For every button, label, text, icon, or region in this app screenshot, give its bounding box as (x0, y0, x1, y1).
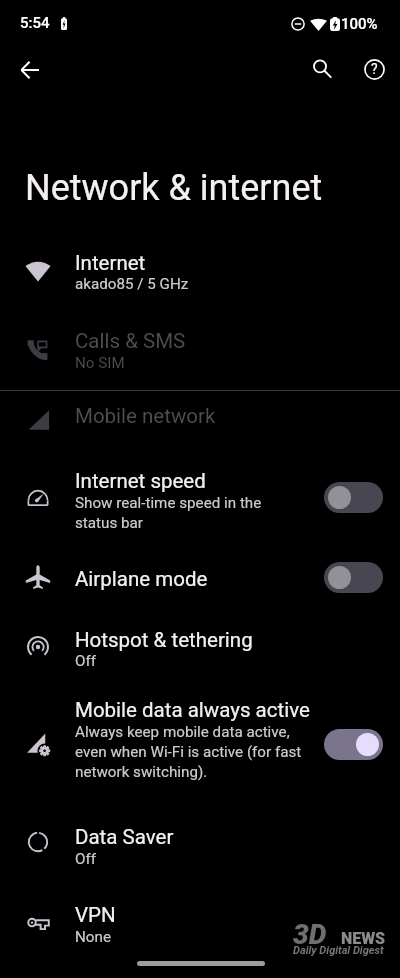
staticText: Calls & SMS (75, 329, 186, 353)
staticText: Network & internet (25, 167, 323, 209)
button[interactable] (324, 562, 383, 593)
staticText: 3D (293, 918, 327, 951)
staticText: Data Saver (75, 825, 174, 849)
button[interactable] (0, 890, 400, 958)
button[interactable] (324, 482, 383, 513)
button[interactable] (0, 812, 400, 880)
staticText: Internet speed (75, 469, 206, 493)
staticText: Airplane mode (75, 567, 208, 591)
staticText: Always keep mobile data active, even whe… (75, 723, 302, 781)
staticText: akado85 / 5 GHz (75, 275, 189, 293)
staticText: 100% (341, 15, 378, 33)
staticText: 5:54 (20, 14, 50, 32)
staticText: NEWS (341, 929, 386, 948)
button[interactable] (0, 452, 400, 545)
staticText: No SIM (75, 354, 125, 372)
staticText: VPN (75, 903, 116, 927)
button[interactable]: Search (298, 45, 346, 93)
staticText: Hotspot & tethering (75, 628, 253, 652)
staticText: Mobile network (75, 404, 216, 428)
staticText: Mobile data always active (75, 698, 310, 722)
button[interactable]: Back (6, 46, 54, 94)
button[interactable] (0, 684, 400, 806)
staticText: None (75, 928, 111, 946)
staticText: ? (371, 61, 378, 77)
button[interactable] (324, 729, 383, 760)
button[interactable] (0, 551, 400, 607)
staticText: Off (75, 652, 97, 670)
button[interactable] (0, 610, 400, 680)
staticText: Show real-time speed in the status bar (75, 494, 262, 532)
staticText: Off (75, 850, 97, 868)
button[interactable] (0, 314, 400, 384)
button[interactable]: Help (350, 45, 398, 93)
button[interactable] (0, 236, 400, 306)
staticText: Daily Digital Digest (293, 944, 384, 957)
staticText: Internet (75, 251, 146, 275)
button[interactable] (0, 394, 400, 448)
